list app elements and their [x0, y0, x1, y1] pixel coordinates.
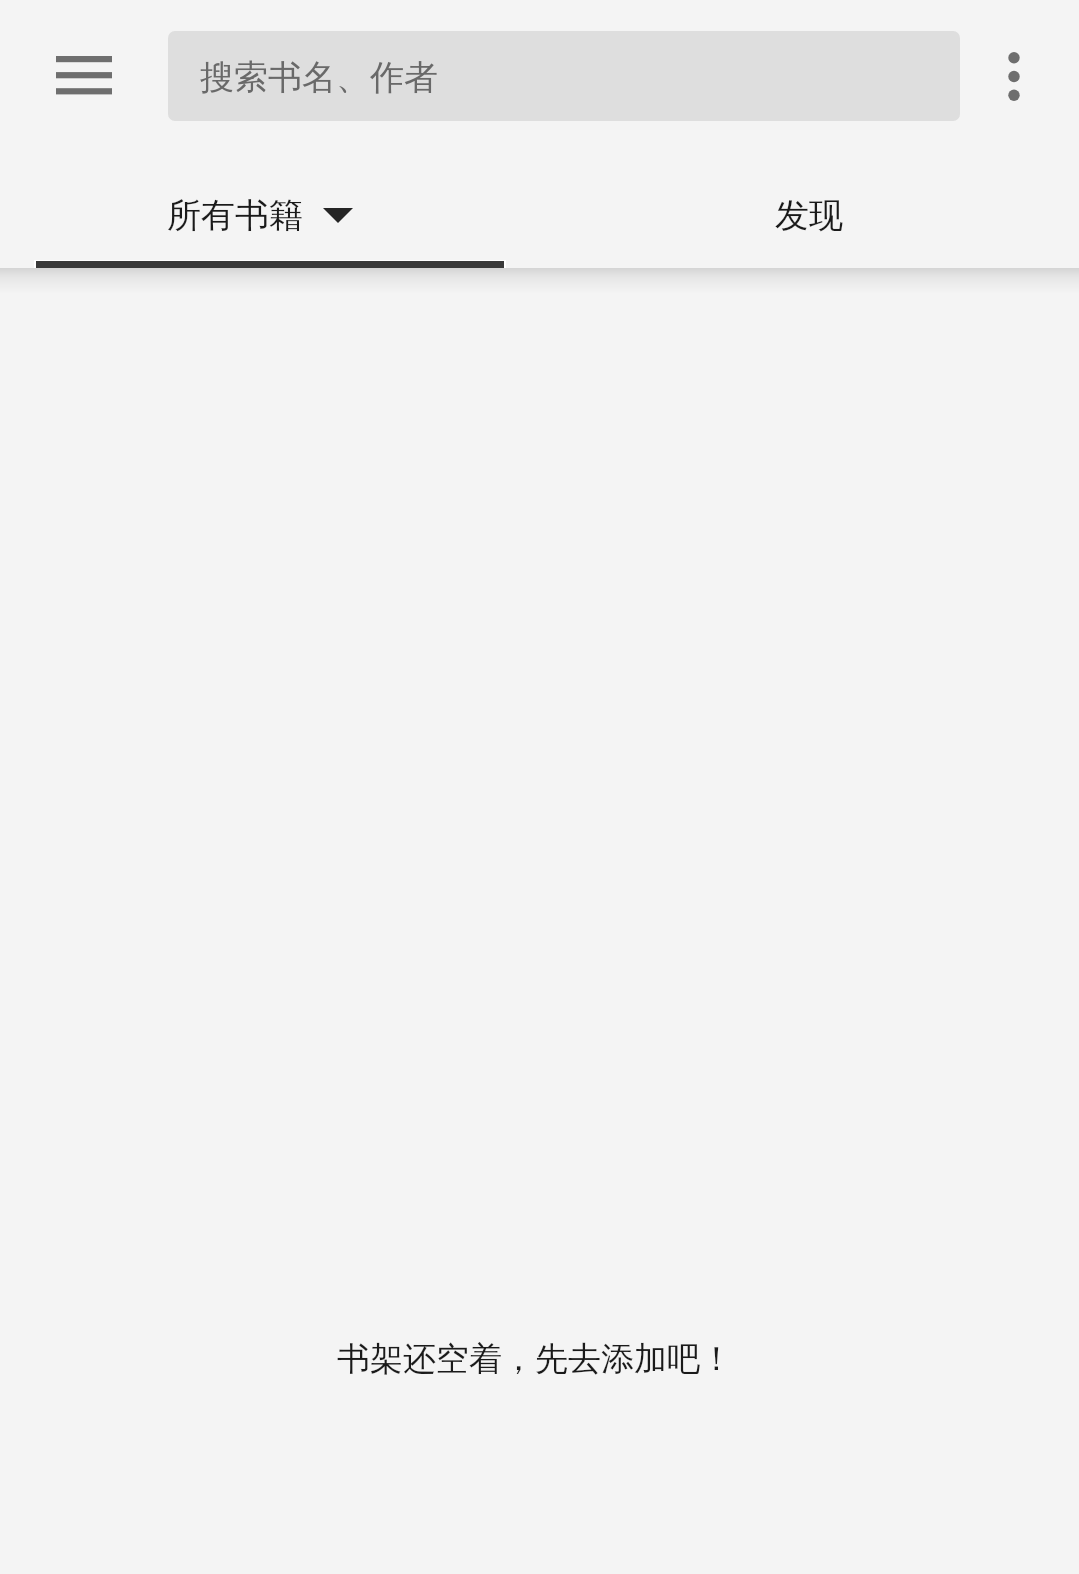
button[interactable]: 搜索书名、作者: [168, 31, 960, 121]
staticText: 发现: [775, 194, 843, 237]
button[interactable]: 发现: [539, 150, 1079, 268]
button[interactable]: More options: [958, 20, 1070, 132]
staticText: 搜索书名、作者: [200, 56, 438, 99]
button[interactable]: Open navigation drawer: [28, 19, 140, 131]
staticText: 所有书籍: [167, 194, 303, 237]
button[interactable]: 所有书籍: [0, 150, 539, 268]
staticText: 书架还空着，先去添加吧！: [337, 1338, 733, 1380]
